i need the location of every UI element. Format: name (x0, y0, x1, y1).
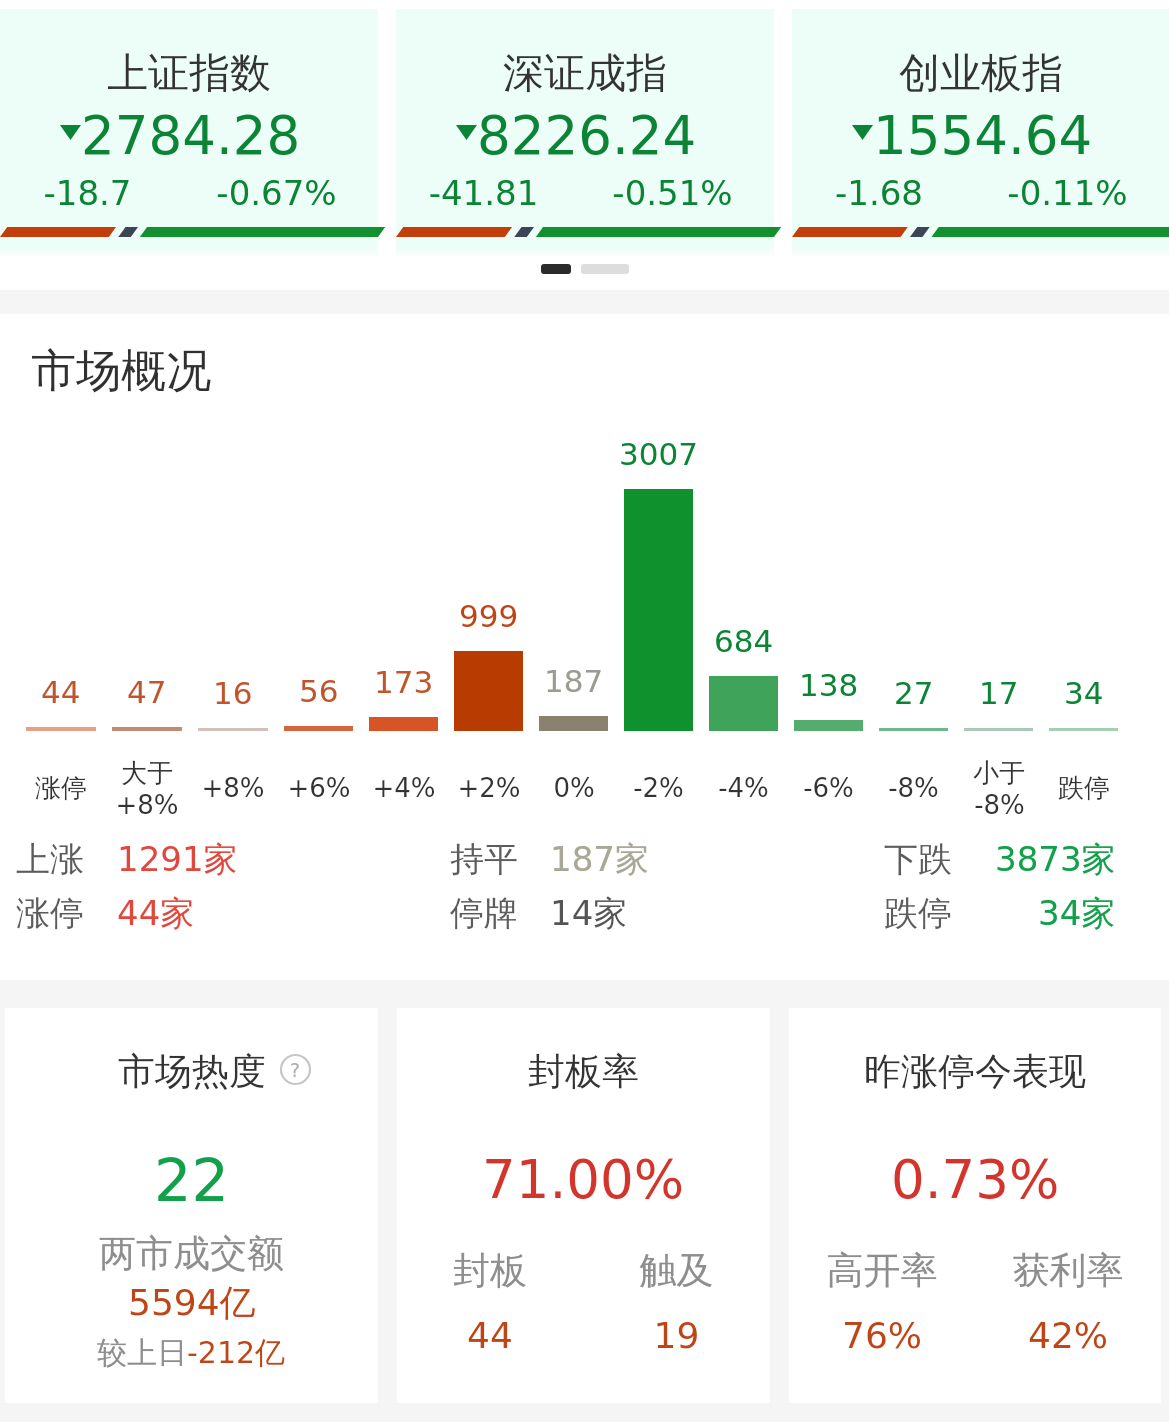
staticText: 停牌 (450, 892, 518, 935)
staticText: 999 (459, 598, 519, 634)
staticText: 44 (41, 674, 81, 710)
staticText: 较上日 (97, 1334, 187, 1372)
button[interactable]: 下跌 (884, 838, 1116, 884)
staticText: +2% (457, 773, 521, 803)
staticText: 上涨 (16, 838, 84, 881)
button[interactable]: 涨停 (16, 892, 450, 938)
staticText: 下跌 (884, 838, 952, 881)
button[interactable]: Help (280, 1054, 311, 1085)
button[interactable]: 封板率 (397, 1008, 770, 1403)
staticText: 持平 (450, 838, 518, 881)
staticText: -0.67% (182, 173, 371, 213)
staticText: -8% (888, 773, 939, 803)
button[interactable]: Page 1 (541, 264, 571, 274)
staticText: 3007 (619, 436, 698, 472)
button[interactable]: 昨涨停今表现 (789, 1008, 1161, 1403)
staticText: 47 (127, 674, 167, 710)
staticText: +6% (287, 773, 351, 803)
staticText: 34 (1064, 675, 1104, 711)
staticText: -4% (718, 773, 769, 803)
staticText: 跌停 (1058, 772, 1110, 805)
staticText: 跌停 (884, 892, 952, 935)
staticText: 涨停 (16, 892, 84, 935)
staticText: 小于 (973, 757, 1025, 790)
staticText: 0.73% (891, 1149, 1060, 1211)
staticText: ? (290, 1059, 301, 1081)
staticText: 22 (154, 1146, 230, 1215)
staticText: 市场概况 (31, 343, 211, 400)
staticText: 71.00% (482, 1149, 685, 1211)
staticText: 56 (299, 673, 339, 709)
staticText: 创业板指 (899, 48, 1063, 100)
button[interactable]: Page 2 (581, 264, 629, 274)
staticText: 16 (213, 675, 253, 711)
staticText: 42% (975, 1315, 1161, 1357)
staticText: 14家 (550, 892, 628, 935)
staticText: 76% (789, 1315, 975, 1357)
button[interactable]: 市场热度 (5, 1008, 378, 1403)
button[interactable]: 持平 (450, 838, 884, 884)
staticText: -212亿 (187, 1334, 286, 1372)
staticText: +8% (201, 773, 265, 803)
staticText: 昨涨停今表现 (864, 1048, 1086, 1095)
staticText: -18.7 (0, 173, 182, 213)
button[interactable]: 上涨 (16, 838, 450, 884)
staticText: 44 (397, 1315, 583, 1357)
staticText: 0% (553, 773, 595, 803)
staticText: 27 (894, 675, 934, 711)
staticText: -0.11% (973, 173, 1162, 213)
staticText: -2% (633, 773, 684, 803)
staticText: 5594亿 (128, 1280, 256, 1325)
staticText: 深证成指 (503, 48, 667, 100)
staticText: 涨停 (35, 772, 87, 805)
staticText: 封板 (397, 1247, 583, 1294)
staticText: 138 (799, 667, 859, 703)
staticText: 1554.64 (873, 105, 1093, 167)
button[interactable]: 创业板指 (792, 9, 1169, 258)
staticText: 大于 (121, 757, 173, 790)
staticText: -0.51% (578, 173, 767, 213)
staticText: 封板率 (528, 1048, 639, 1095)
staticText: -1.68 (785, 173, 973, 213)
staticText: 173 (374, 664, 434, 700)
staticText: +4% (372, 773, 436, 803)
staticText: -41.81 (389, 173, 578, 213)
staticText: 触及 (583, 1247, 770, 1294)
button[interactable]: 停牌 (450, 892, 884, 938)
staticText: 44家 (117, 892, 195, 935)
staticText: -6% (803, 773, 854, 803)
staticText: +8% (115, 790, 179, 820)
staticText: 187家 (550, 838, 649, 881)
button[interactable]: 深证成指 (396, 9, 774, 258)
button[interactable]: 跌停 (884, 892, 1116, 938)
staticText: 2784.28 (81, 105, 301, 167)
button[interactable]: 上证指数 (0, 9, 378, 258)
staticText: 获利率 (975, 1247, 1161, 1294)
staticText: 187 (544, 663, 604, 699)
staticText: 上证指数 (107, 48, 271, 100)
staticText: 市场热度 (118, 1048, 266, 1092)
staticText: 高开率 (789, 1247, 975, 1294)
staticText: 8226.24 (477, 105, 697, 167)
staticText: 3873家 (995, 838, 1116, 881)
staticText: 1291家 (117, 838, 238, 881)
staticText: 两市成交额 (99, 1230, 284, 1277)
staticText: 19 (583, 1315, 770, 1357)
staticText: 684 (714, 623, 774, 659)
staticText: 34家 (1038, 892, 1116, 935)
staticText: 17 (979, 675, 1019, 711)
staticText: -8% (974, 790, 1025, 820)
